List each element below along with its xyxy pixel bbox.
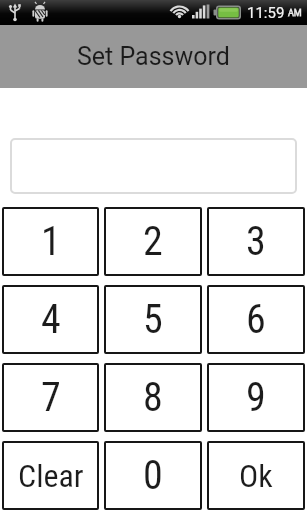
staticText: 4	[41, 296, 61, 343]
staticText: Ok	[239, 457, 273, 495]
button[interactable]: 0	[104, 441, 202, 510]
button[interactable]: 4	[2, 285, 99, 354]
staticText: 8	[143, 374, 163, 421]
button[interactable]: 8	[104, 363, 202, 432]
staticText: 2	[143, 218, 163, 265]
button[interactable]: 3	[207, 207, 305, 276]
staticText: 1	[41, 218, 61, 265]
staticText: Set Password	[77, 42, 230, 71]
staticText: 7	[41, 374, 61, 421]
button[interactable]: 7	[2, 363, 99, 432]
staticText: 9	[246, 374, 266, 421]
button[interactable]	[10, 138, 297, 194]
staticText: AM	[288, 8, 302, 19]
staticText: 6	[246, 296, 266, 343]
button[interactable]: Ok	[207, 441, 305, 510]
staticText: 0	[143, 452, 163, 499]
button[interactable]: 2	[104, 207, 202, 276]
button[interactable]: Clear	[2, 441, 99, 510]
button[interactable]: 9	[207, 363, 305, 432]
button[interactable]: 6	[207, 285, 305, 354]
staticText: Clear	[18, 457, 84, 495]
staticText: 3	[246, 218, 266, 265]
staticText: 11:59	[247, 4, 285, 22]
button[interactable]: 1	[2, 207, 99, 276]
staticText: 5	[143, 296, 163, 343]
button[interactable]: 5	[104, 285, 202, 354]
